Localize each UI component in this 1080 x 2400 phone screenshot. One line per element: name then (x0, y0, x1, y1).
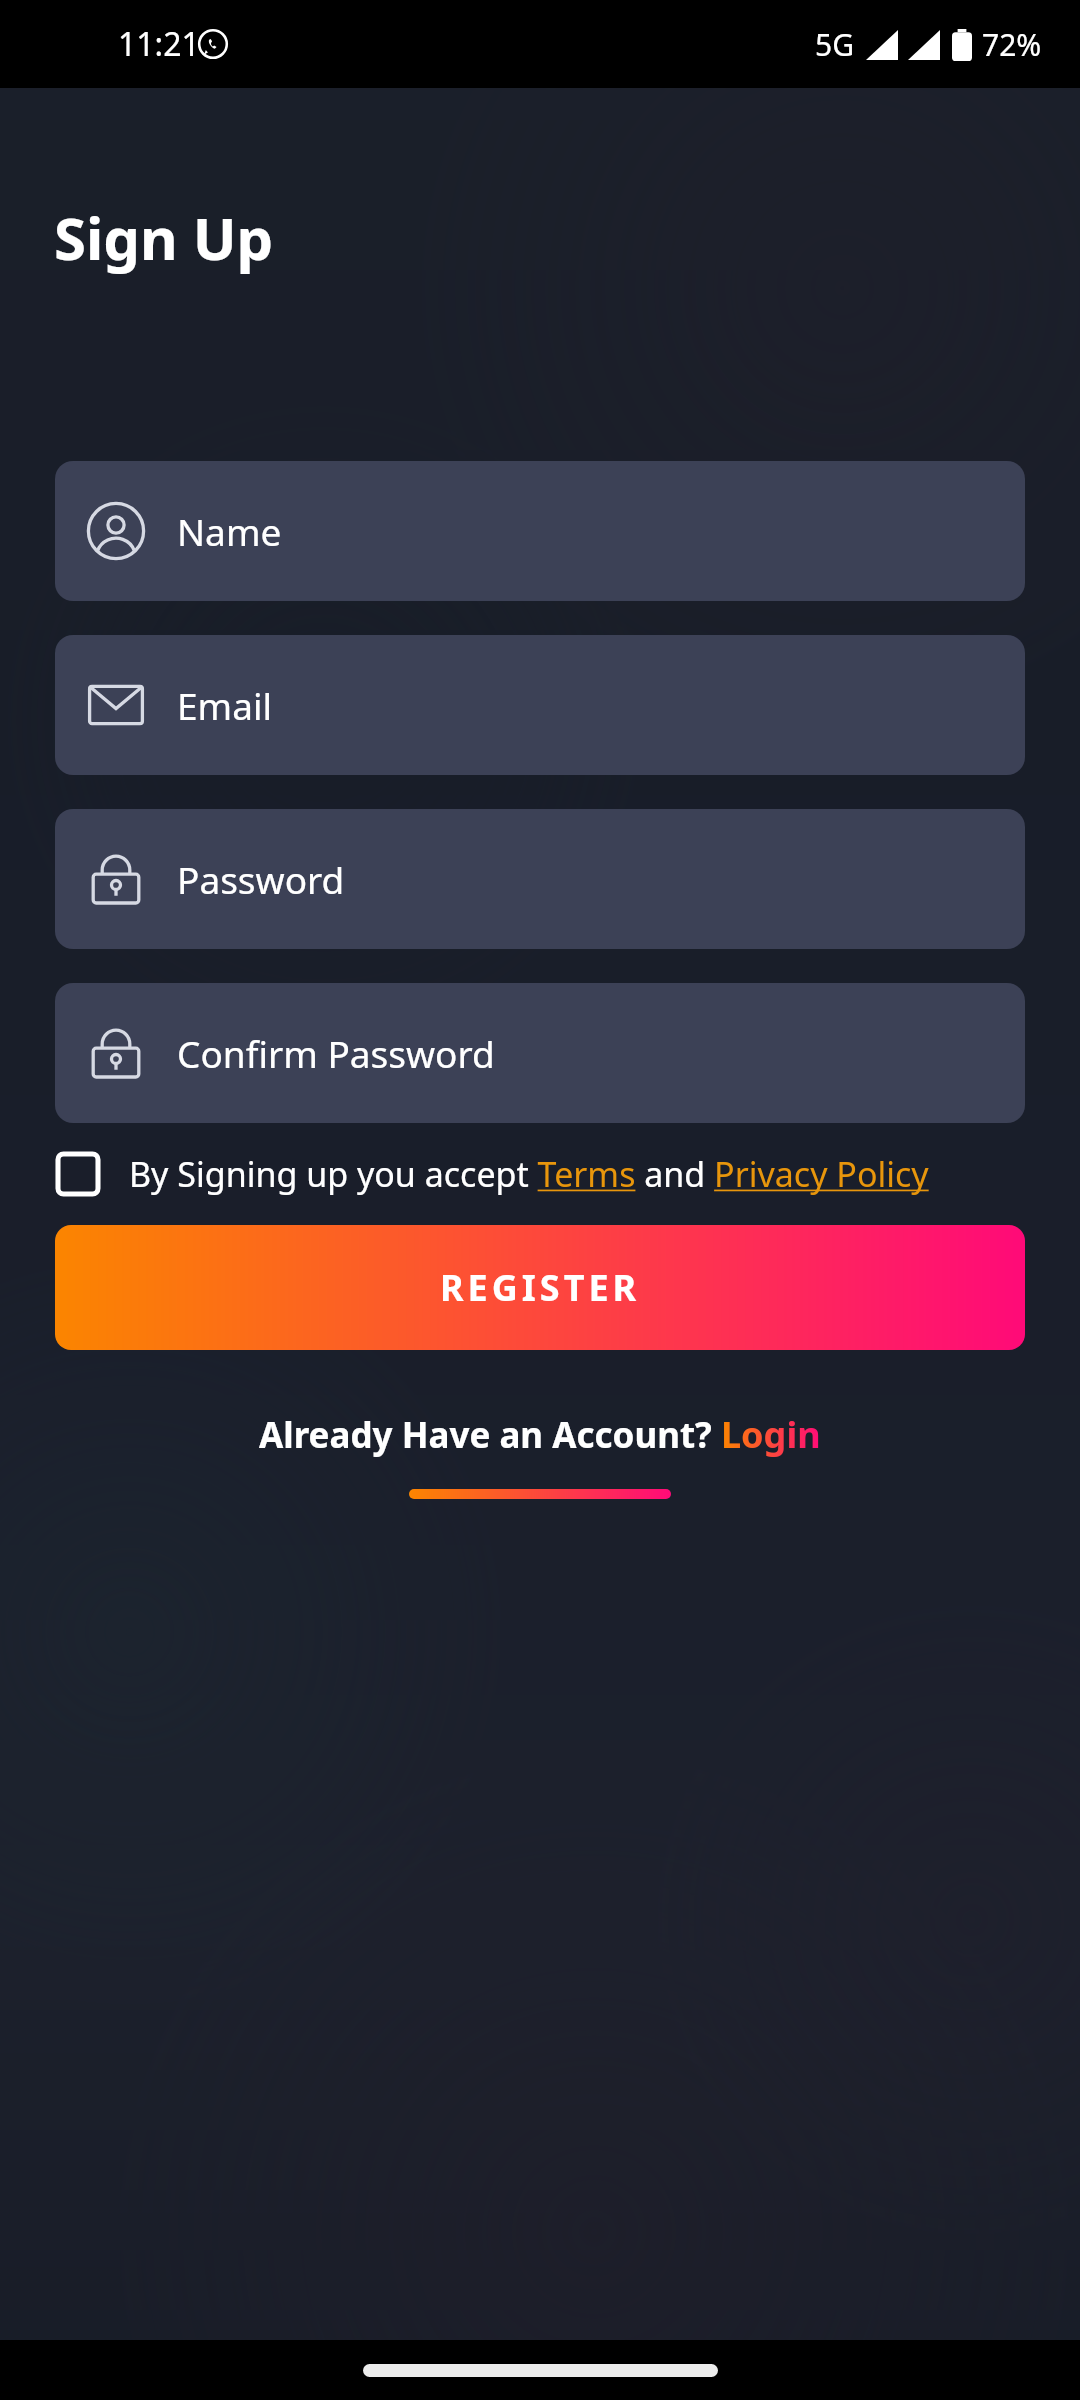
button[interactable]: Password (55, 809, 1025, 949)
staticText: Sign Up (54, 198, 274, 277)
button[interactable]: REGISTER (55, 1225, 1025, 1350)
staticText: Email (177, 680, 273, 730)
staticText: Already Have an Account? (259, 1411, 721, 1459)
staticText: 72% (982, 24, 1042, 65)
staticText: Confirm Password (177, 1028, 495, 1078)
other: Accept terms checkbox (55, 1151, 101, 1197)
staticText: 5G (815, 24, 854, 65)
button[interactable]: Login (721, 1410, 821, 1459)
staticText: REGISTER (440, 1263, 641, 1312)
button[interactable]: Name (55, 461, 1025, 601)
staticText: Login (721, 1410, 821, 1459)
staticText: 11:21 (118, 22, 200, 66)
staticText: Password (177, 854, 345, 904)
staticText: Name (177, 506, 282, 556)
button[interactable]: Confirm Password (55, 983, 1025, 1123)
staticText: By Signing up you accept Terms and Priva… (129, 1151, 929, 1197)
button[interactable]: Email (55, 635, 1025, 775)
button[interactable]: Accept terms checkbox (55, 1151, 1040, 1197)
